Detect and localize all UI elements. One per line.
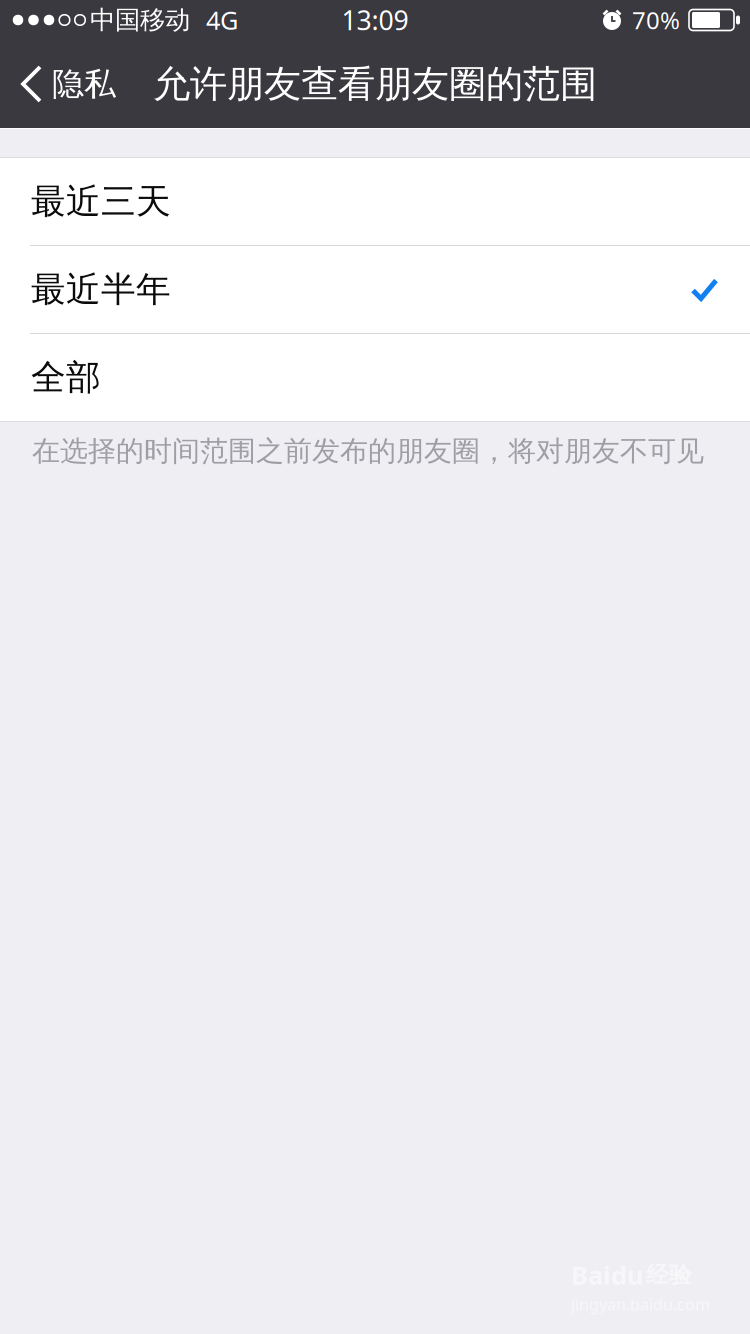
staticText: 在选择的时间范围之前发布的朋友圈，将对朋友不可见 [32, 434, 704, 468]
staticText: 全部 [31, 356, 101, 399]
button[interactable]: 最近半年 [0, 246, 750, 333]
staticText: 允许朋友查看朋友圈的范围 [153, 61, 597, 107]
staticText: 中国移动 [90, 4, 190, 35]
staticText: Baidu [571, 1258, 643, 1292]
staticText: 最近半年 [31, 268, 171, 311]
staticText: 隐私 [52, 64, 116, 104]
staticText: 最近三天 [31, 180, 171, 223]
button[interactable]: 最近三天 [0, 158, 750, 245]
staticText: 70% [632, 4, 680, 36]
staticText: 4G [206, 3, 238, 37]
button[interactable]: 全部 [0, 334, 750, 421]
staticText: 经验 [646, 1261, 692, 1289]
staticText: 13:09 [341, 2, 408, 38]
button[interactable]: 返回 隐私 [0, 40, 138, 128]
